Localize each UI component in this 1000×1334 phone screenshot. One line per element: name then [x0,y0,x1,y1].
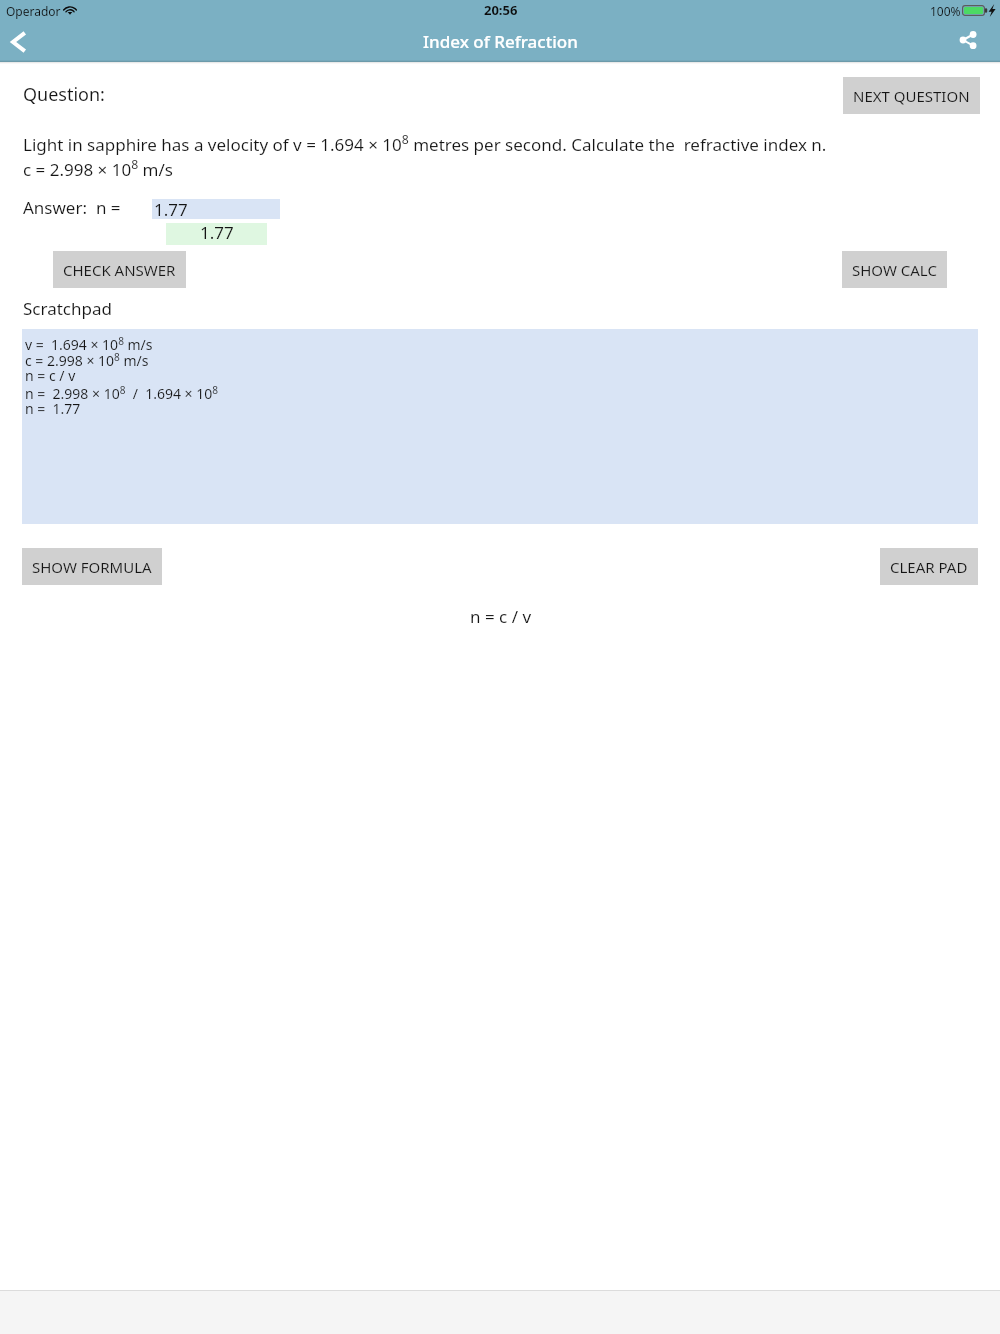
staticText: v = 1.694 × 108 m/s [25,334,153,354]
staticText: Index of Refraction [423,30,578,53]
button[interactable]: NEXT QUESTION [843,77,980,114]
staticText: Operador [6,3,61,19]
staticText: 1.77 [154,198,188,218]
staticText: Answer: n = [23,196,121,219]
button[interactable]: Share [954,22,1000,62]
button[interactable]: Back [0,22,46,62]
staticText: Question: [23,82,105,107]
staticText: n = 1.77 [25,399,81,418]
staticText: n = 2.998 × 108 / 1.694 × 108 [25,383,219,403]
staticText: Light in sapphire has a velocity of v = … [23,131,827,156]
staticText: 1.77 [200,221,234,243]
staticText: c = 2.998 × 108 m/s [23,156,173,181]
staticText: n = c / v [25,366,76,385]
staticText: n = c / v [470,605,532,628]
button[interactable]: Scratchpad [22,329,978,524]
button[interactable]: CLEAR PAD [880,548,978,585]
staticText: Scratchpad [23,297,112,320]
staticText: CHECK ANSWER [63,260,176,280]
staticText: CLEAR PAD [890,557,968,577]
staticText: c = 2.998 × 108 m/s [25,350,149,370]
staticText: NEXT QUESTION [853,86,970,106]
button[interactable]: SHOW CALC [842,251,947,288]
button[interactable]: SHOW FORMULA [22,548,162,585]
staticText: SHOW FORMULA [32,557,152,577]
staticText: 100% [930,3,961,19]
staticText: SHOW CALC [852,260,937,280]
button[interactable]: Answer input field [152,199,280,219]
button[interactable]: CHECK ANSWER [53,251,186,288]
staticText: 20:56 [484,1,518,19]
